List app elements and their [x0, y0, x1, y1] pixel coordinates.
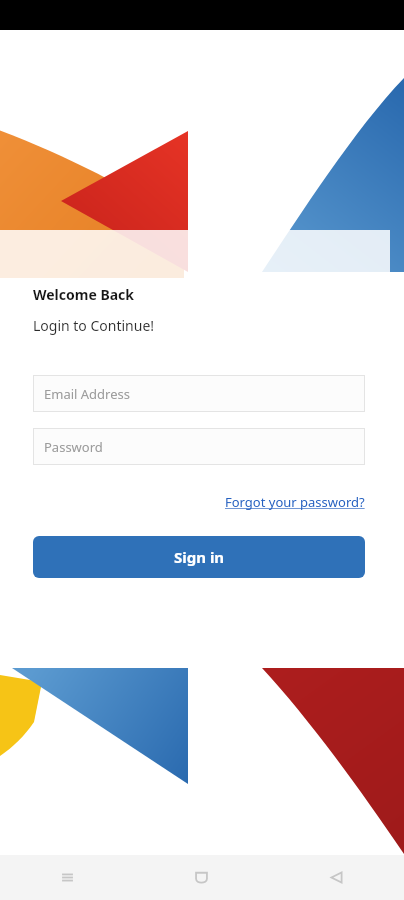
staticText: Login to Continue! [33, 316, 155, 335]
staticText: Email Address [44, 385, 130, 403]
button[interactable]: Forgot your password? [223, 490, 367, 514]
button[interactable]: Back [269, 855, 404, 900]
staticText: Welcome Back [33, 285, 135, 304]
button[interactable]: Email Address [33, 375, 365, 412]
button[interactable]: Sign in [33, 536, 365, 578]
button[interactable]: Recent apps [0, 855, 134, 900]
button[interactable]: Home [134, 855, 269, 900]
staticText: Forgot your password? [225, 493, 365, 511]
staticText: Password [44, 438, 103, 456]
staticText: Sign in [174, 547, 225, 567]
button[interactable]: Password [33, 428, 365, 465]
